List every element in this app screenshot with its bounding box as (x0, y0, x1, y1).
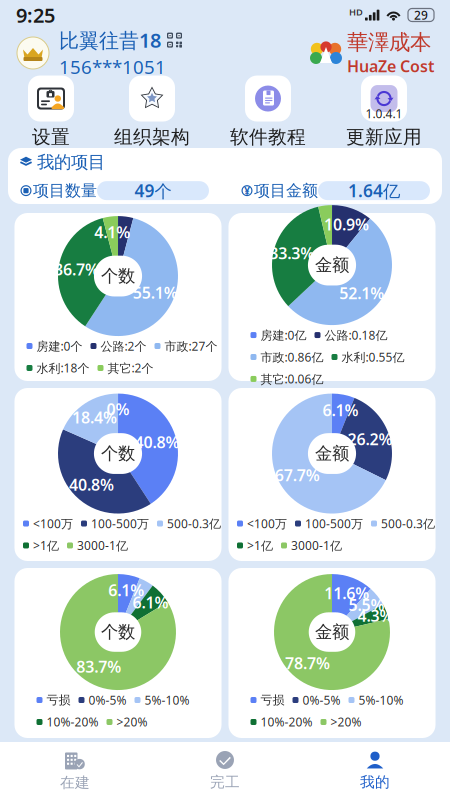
button[interactable]: 完工 (150, 744, 300, 798)
button[interactable]: 我的 (300, 744, 450, 798)
staticText: 个数 (101, 265, 135, 287)
staticText: 组织架构 (114, 125, 190, 148)
staticText: 我的 (360, 773, 390, 791)
staticText: 0% (106, 398, 129, 420)
button[interactable]: 设置 (28, 75, 74, 148)
staticText: 水利:0.55亿 (341, 349, 404, 365)
staticText: 500-0.3亿 (167, 516, 221, 531)
staticText: 100-500万 (305, 516, 363, 531)
staticText: 4.3% (357, 605, 393, 626)
staticText: 10%-20% (260, 714, 312, 730)
staticText: 83.7% (76, 656, 121, 677)
staticText: 100-500万 (91, 516, 149, 531)
staticText: 个数 (101, 443, 135, 464)
staticText: 78.7% (285, 652, 330, 673)
staticText: 0%-5% (302, 692, 340, 708)
staticText: 10.9% (324, 214, 369, 235)
staticText: 1.0.4.1 (365, 106, 402, 121)
staticText: 金额 (315, 254, 349, 276)
staticText: 10%-20% (46, 714, 98, 730)
staticText: 55.1% (133, 282, 178, 303)
staticText: 金额 (315, 443, 349, 464)
staticText: 40.8% (135, 431, 180, 452)
staticText: 亏损 (260, 693, 284, 707)
staticText: 6.1% (133, 592, 169, 613)
staticText: 在建 (60, 773, 90, 791)
staticText: 500-0.3亿 (381, 516, 435, 531)
staticText: 公路:0.18亿 (324, 327, 387, 343)
staticText: 公路:2个 (100, 338, 146, 354)
staticText: 6.1% (322, 399, 358, 421)
button[interactable]: 在建 (0, 744, 150, 798)
staticText: 18.4% (72, 407, 117, 428)
staticText: 其它:0.06亿 (260, 371, 323, 387)
staticText: 0%-5% (88, 692, 126, 708)
button[interactable]: 1.0.4.1 (346, 75, 422, 148)
staticText: 房建:0个 (36, 338, 82, 354)
staticText: 3000-1亿 (291, 537, 342, 553)
staticText: 市政:27个 (164, 338, 217, 354)
button[interactable]: 软件教程 (230, 75, 306, 148)
staticText: <100万 (247, 516, 287, 531)
staticText: 52.1% (339, 282, 384, 303)
staticText: 完工 (210, 773, 240, 791)
staticText: 11.6% (324, 582, 369, 604)
staticText: 5.5% (348, 594, 384, 615)
staticText: ¥ (244, 184, 250, 198)
staticText: 33.3% (269, 242, 314, 264)
staticText: 更新应用 (346, 125, 422, 148)
staticText: 3000-1亿 (77, 537, 128, 553)
staticText: 36.7% (54, 259, 99, 280)
staticText: >1亿 (33, 537, 59, 553)
staticText: 项目金额 (254, 181, 318, 200)
staticText: 6.1% (108, 579, 144, 600)
staticText: 1.64亿 (348, 179, 400, 202)
staticText: 67.7% (275, 464, 320, 486)
staticText: 亏损 (46, 693, 70, 707)
staticText: HuaZe Cost (347, 55, 434, 77)
staticText: <100万 (33, 516, 73, 531)
staticText: 软件教程 (230, 125, 306, 148)
staticText: 比翼往昔18 (59, 27, 161, 53)
staticText: 其它:2个 (107, 360, 153, 376)
staticText: >20% (116, 714, 147, 730)
staticText: 设置 (32, 125, 70, 148)
staticText: 项目数量 (33, 181, 97, 200)
staticText: 26.2% (348, 428, 393, 450)
staticText: 水利:18个 (36, 360, 89, 376)
staticText: 市政:0.86亿 (260, 349, 323, 365)
staticText: 華澤成本 (347, 29, 431, 55)
staticText: 我的项目 (37, 151, 105, 173)
staticText: 房建:0亿 (260, 327, 306, 343)
staticText: 金额 (315, 621, 349, 643)
staticText: 156***1051 (59, 54, 166, 79)
staticText: 40.8% (69, 474, 114, 495)
staticText: 5%-10% (144, 692, 189, 708)
staticText: 5%-10% (358, 692, 403, 708)
staticText: 29 (414, 7, 428, 23)
staticText: >20% (330, 714, 361, 730)
staticText: 49个 (134, 179, 171, 202)
staticText: 4.1% (94, 221, 130, 243)
staticText: >1亿 (247, 537, 273, 553)
staticText: 9:25 (16, 2, 55, 28)
staticText: 个数 (101, 621, 135, 643)
button[interactable]: 二维码 (167, 33, 182, 48)
button[interactable]: 组织架构 (114, 75, 190, 148)
staticText: HD (349, 6, 363, 18)
